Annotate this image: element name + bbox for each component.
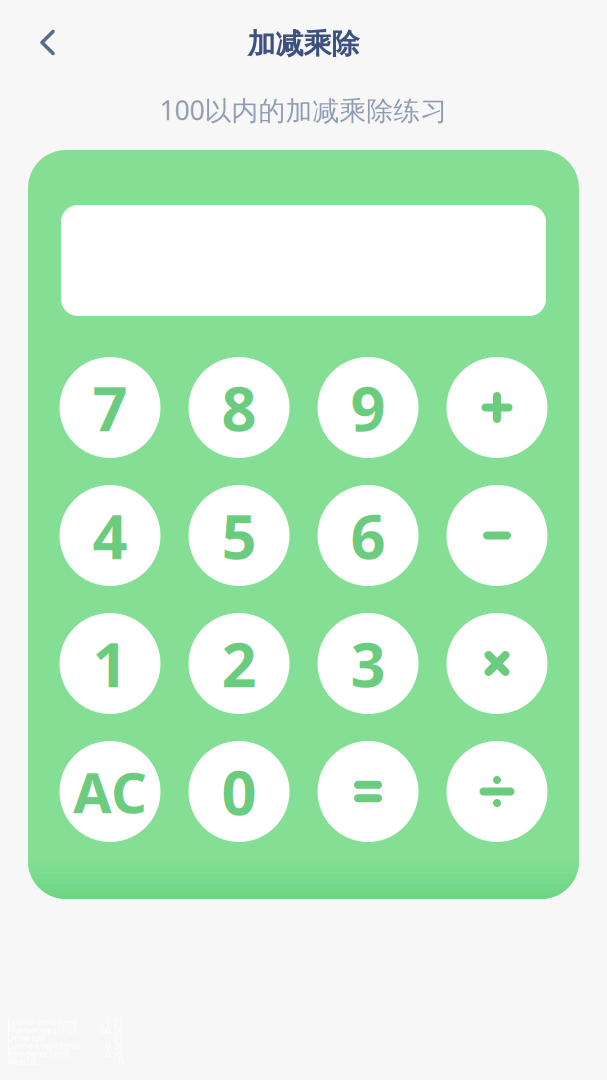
staticText: 4 (92, 495, 127, 576)
button[interactable]: 4 (59, 485, 160, 586)
button[interactable]: 7 (59, 357, 160, 458)
button[interactable]: Clear (59, 741, 160, 842)
staticText: 7 (92, 367, 127, 448)
button[interactable]: Back (0, 10, 80, 79)
staticText: 加减乘除 (247, 27, 359, 61)
staticText: 2 (221, 623, 256, 704)
button[interactable]: Multiply (446, 613, 547, 714)
button[interactable]: 6 (317, 485, 418, 586)
button[interactable]: 8 (188, 357, 289, 458)
button[interactable]: Equals (317, 741, 418, 842)
button[interactable]: Divide (446, 741, 547, 842)
staticText: 100以内的加减乘除练习 (159, 92, 447, 128)
staticText: 6 (350, 495, 385, 576)
staticText: 5 (221, 495, 256, 576)
button[interactable]: Plus (446, 357, 547, 458)
button[interactable]: 0 (188, 741, 289, 842)
button[interactable]: 3 (317, 613, 418, 714)
button[interactable]: 5 (188, 485, 289, 586)
button[interactable]: Minus (446, 485, 547, 586)
button[interactable]: 2 (188, 613, 289, 714)
staticText: 9 (350, 367, 385, 448)
staticText: AC (73, 754, 147, 829)
button[interactable]: 9 (317, 357, 418, 458)
staticText: 8 (221, 367, 256, 448)
staticText: 1 (92, 623, 127, 704)
staticText: 0 (221, 751, 256, 832)
button[interactable]: 1 (59, 613, 160, 714)
staticText: 3 (350, 623, 385, 704)
